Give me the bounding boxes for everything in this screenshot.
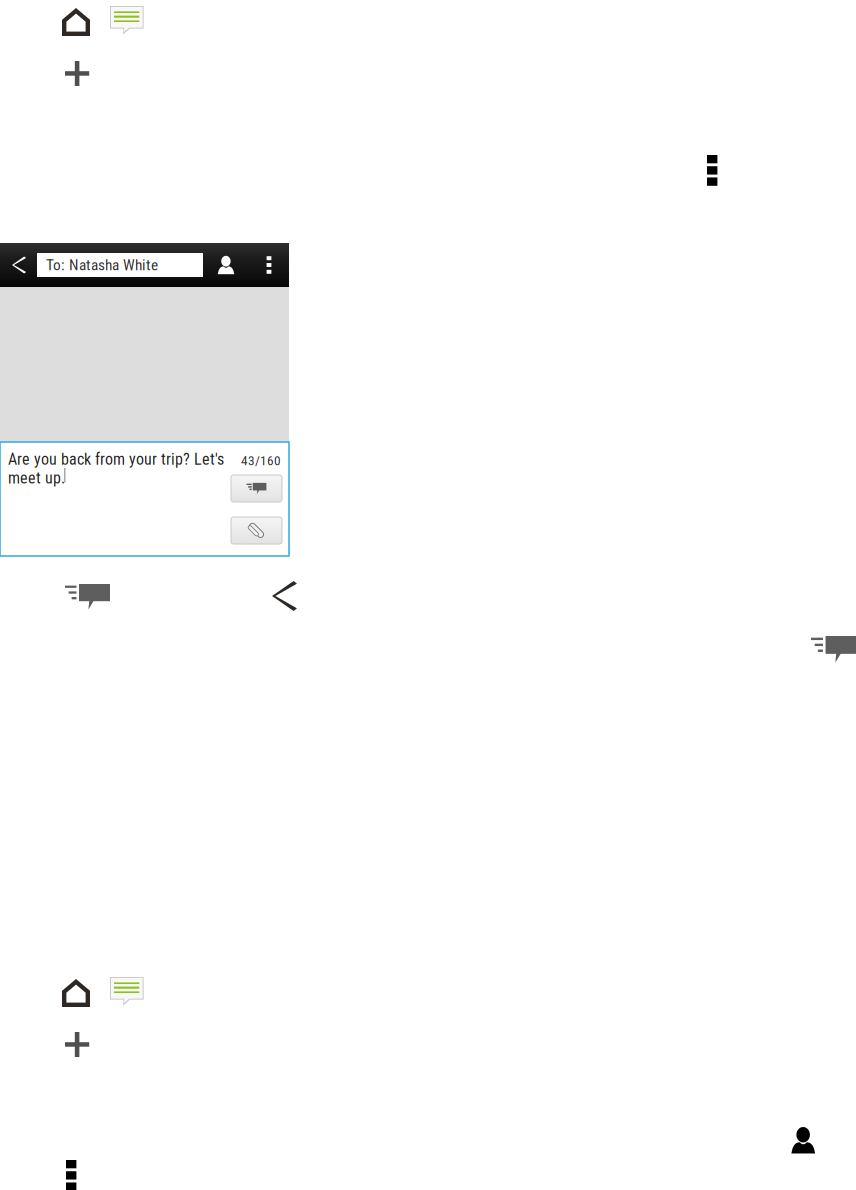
button[interactable]: More options <box>258 243 280 287</box>
button[interactable]: Send message <box>65 584 110 609</box>
button[interactable]: Home <box>62 8 90 36</box>
button[interactable]: Contact <box>791 1127 815 1153</box>
button[interactable]: Messages <box>110 977 143 1006</box>
button[interactable]: More options <box>707 155 717 186</box>
button[interactable]: Messages <box>110 6 143 35</box>
button[interactable]: More options <box>66 1160 76 1190</box>
button[interactable]: Attach file <box>231 517 282 544</box>
button[interactable]: Contacts <box>213 243 239 287</box>
button[interactable]: Back <box>272 581 297 611</box>
button[interactable]: Back <box>6 243 32 287</box>
button[interactable]: Home <box>62 979 90 1007</box>
button[interactable]: New message <box>65 1032 89 1057</box>
button[interactable]: Send message <box>231 475 282 502</box>
button[interactable]: New message <box>65 61 89 86</box>
staticText: Are you back from your trip? Let's meet … <box>8 450 224 487</box>
staticText: To: Natasha White <box>46 256 158 274</box>
button[interactable]: Send message <box>811 636 856 662</box>
staticText: 43/160 <box>241 453 281 469</box>
